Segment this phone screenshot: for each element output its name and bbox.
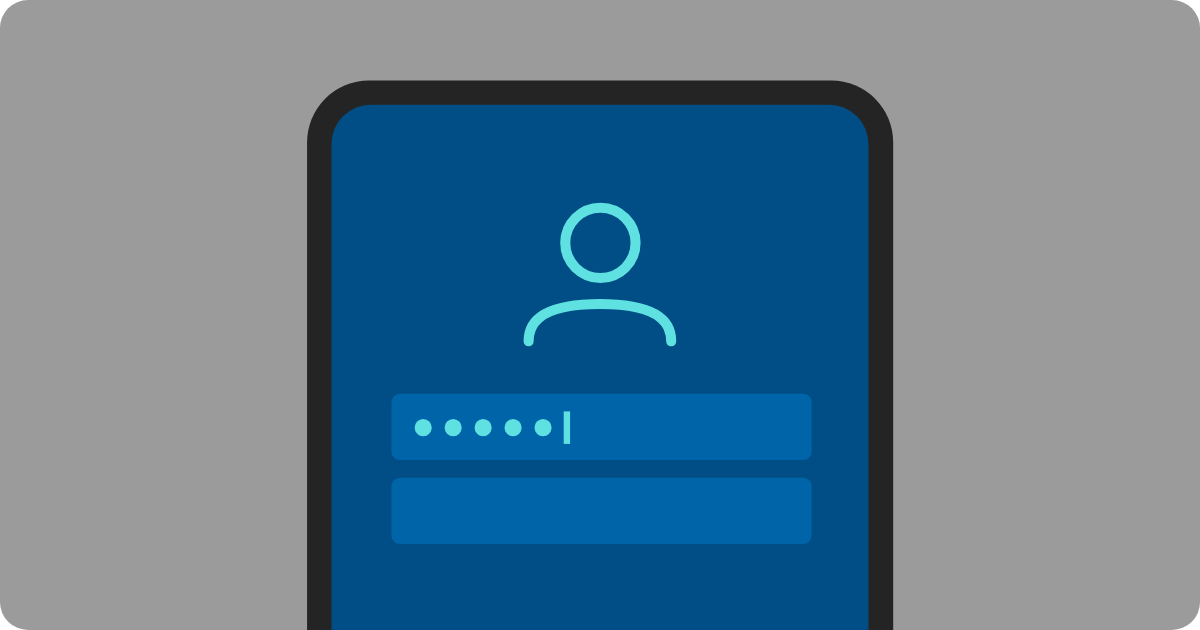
button[interactable]: Account avatar <box>550 198 650 343</box>
button[interactable]: Password field <box>391 394 811 460</box>
